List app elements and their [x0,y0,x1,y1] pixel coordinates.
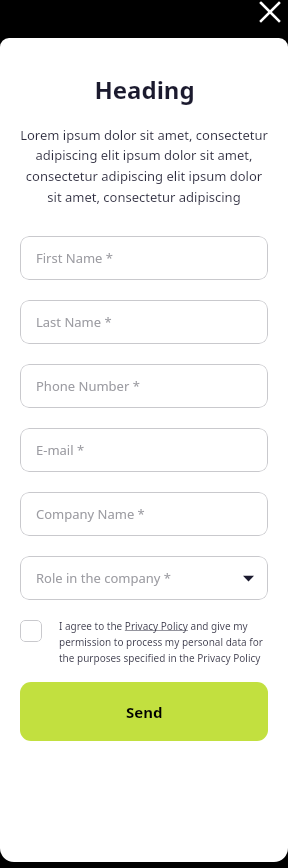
staticText: Heading [94,73,195,106]
button[interactable]: I agree to the Privacy Policy and give m… [20,619,268,664]
button[interactable]: Send [20,682,268,741]
button[interactable]: Company Name * [20,492,268,536]
button[interactable]: Close [252,0,288,36]
button[interactable]: Last Name * [20,300,268,344]
staticText: I agree to the Privacy Policy and give m… [59,619,268,664]
button[interactable]: E-mail * [20,428,268,472]
staticText: Last Name * [36,313,112,331]
staticText: Phone Number * [36,377,140,395]
staticText: Company Name * [36,505,145,523]
staticText: Lorem ipsum dolor sit amet, consectetur … [20,126,268,206]
staticText: First Name * [36,249,113,267]
staticText: E-mail * [36,441,85,459]
staticText: Send [126,702,163,722]
button[interactable]: Role in the company * [20,556,268,600]
button[interactable]: First Name * [20,236,268,280]
staticText: Role in the company * [36,569,171,587]
button[interactable]: Phone Number * [20,364,268,408]
